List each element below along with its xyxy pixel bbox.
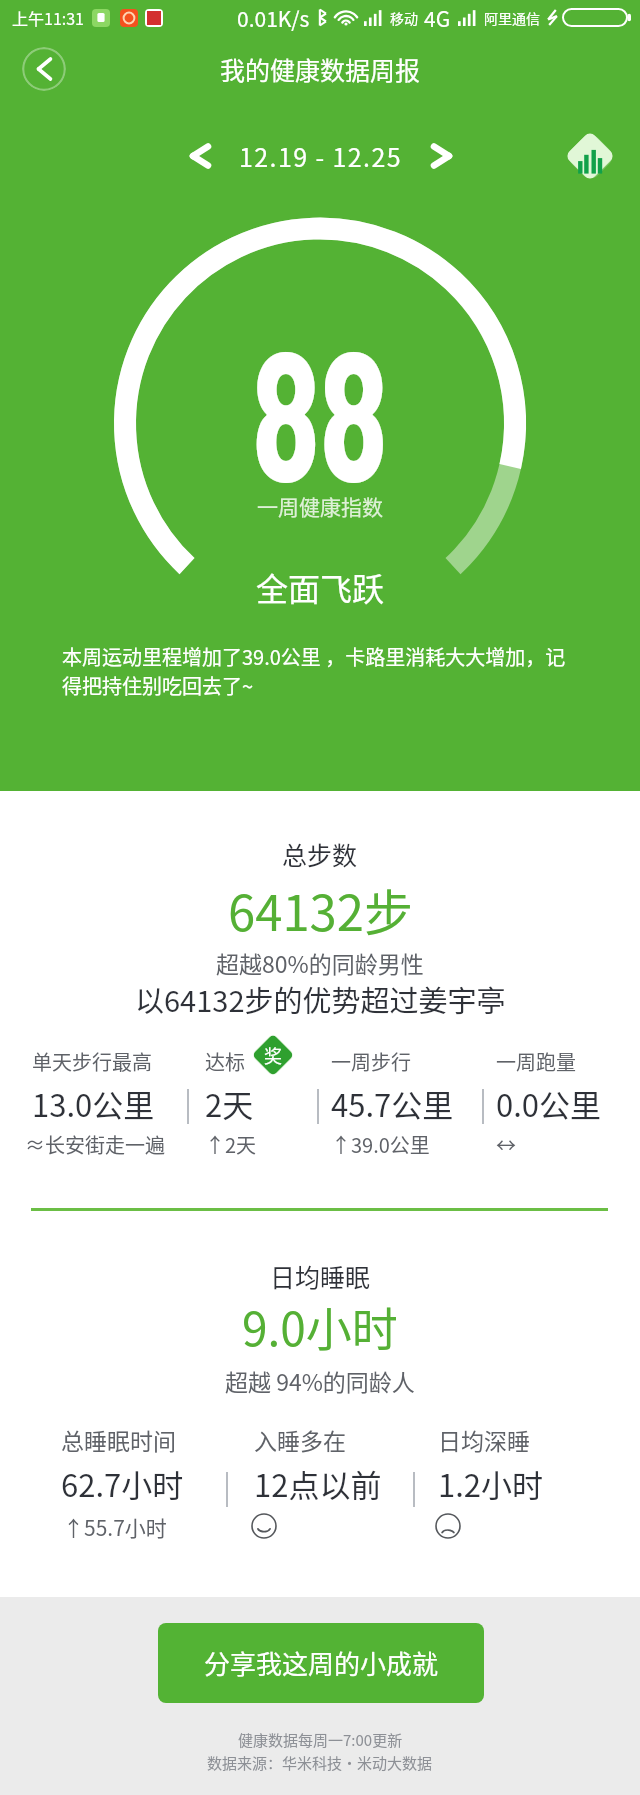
staticText: ↔ <box>496 1130 516 1159</box>
staticText: 总睡眠时间 <box>61 1423 176 1456</box>
button[interactable]: 分享我这周的小成就 <box>158 1623 484 1703</box>
staticText: 12.19 - 12.25 <box>239 138 402 174</box>
staticText: 一周健康指数 <box>257 491 383 521</box>
button[interactable]: Chart <box>564 130 616 182</box>
staticText: ≈长安街走一遍 <box>25 1130 165 1159</box>
staticText: 45.7公里 <box>331 1081 454 1126</box>
staticText: 入睡多在 <box>254 1423 346 1456</box>
staticText: 日均睡眠 <box>270 1258 371 1294</box>
staticText: ↑39.0公里 <box>331 1130 430 1159</box>
staticText: 4G <box>424 3 451 33</box>
staticText: 超越80%的同龄男性 <box>216 946 424 979</box>
staticText: 本周运动里程增加了39.0公里 ，卡路里消耗大大增加，记得把持住别吃回去了~ <box>62 642 582 700</box>
button[interactable]: Back <box>22 47 66 91</box>
staticText: 分享我这周的小成就 <box>204 1644 439 1682</box>
staticText: 13.0公里 <box>32 1081 155 1126</box>
staticText: 移动 <box>390 8 418 28</box>
staticText: 单天步行最高 <box>32 1047 152 1076</box>
staticText: 阿里通信 <box>484 8 540 28</box>
staticText: 健康数据每周一7:00更新 <box>238 1729 403 1751</box>
staticText: 一周跑量 <box>496 1047 576 1076</box>
staticText: 88 <box>252 301 388 518</box>
staticText: 0.0公里 <box>496 1081 602 1126</box>
staticText: ↑2天 <box>205 1130 257 1159</box>
staticText: 一周步行 <box>331 1047 411 1076</box>
staticText: 达标 <box>205 1047 245 1076</box>
staticText: 以64132步的优势超过姜宇亭 <box>135 978 506 1020</box>
button[interactable]: Previous week <box>177 134 221 178</box>
staticText: 奖 <box>264 1042 282 1068</box>
staticText: 0.01K/s <box>237 3 310 33</box>
staticText: 日均深睡 <box>438 1423 530 1456</box>
staticText: 上午11:31 <box>12 6 84 29</box>
staticText: 1.2小时 <box>438 1461 544 1506</box>
staticText: 我的健康数据周报 <box>220 51 421 87</box>
staticText: 2天 <box>205 1081 254 1126</box>
staticText: 12点以前 <box>254 1461 382 1506</box>
staticText: 全面飞跃 <box>256 564 385 610</box>
staticText: 总步数 <box>282 836 358 872</box>
staticText: 64132步 <box>228 874 413 945</box>
button[interactable]: Next week <box>421 134 465 178</box>
staticText: 62.7小时 <box>61 1461 184 1506</box>
staticText: 数据来源：华米科技·米动大数据 <box>207 1752 433 1774</box>
staticText: 9.0小时 <box>242 1293 398 1360</box>
staticText: 超越 94%的同龄人 <box>225 1364 415 1397</box>
staticText: ↑55.7小时 <box>63 1512 167 1542</box>
